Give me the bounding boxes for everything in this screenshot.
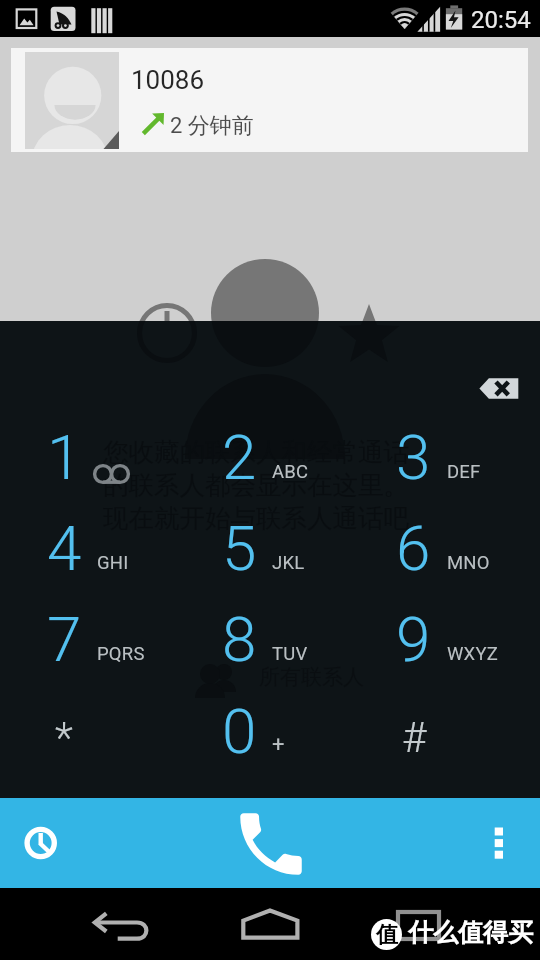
staticText: 8: [222, 603, 257, 676]
button[interactable]: 7: [0, 593, 180, 684]
staticText: 6: [396, 512, 431, 585]
staticText: +: [272, 732, 285, 758]
staticText: MNO: [447, 552, 490, 574]
staticText: 什么值得买: [408, 917, 533, 948]
button[interactable]: Call history: [8, 811, 74, 877]
staticText: JKL: [272, 552, 305, 574]
staticText: 1: [47, 421, 82, 494]
button[interactable]: Dial: [230, 803, 312, 885]
staticText: 10086: [131, 65, 205, 95]
staticText: 2: [222, 421, 257, 494]
staticText: WXYZ: [447, 643, 499, 665]
button[interactable]: Back: [86, 904, 154, 944]
button[interactable]: *: [0, 685, 180, 776]
staticText: 值: [376, 921, 398, 949]
button[interactable]: 9: [360, 593, 540, 684]
staticText: ABC: [272, 461, 309, 483]
staticText: *: [55, 713, 73, 762]
staticText: 5: [222, 512, 257, 585]
button[interactable]: 3: [360, 411, 540, 502]
button[interactable]: 1: [0, 411, 180, 502]
button[interactable]: More options: [472, 812, 524, 874]
button[interactable]: 5: [180, 502, 360, 593]
button[interactable]: Delete: [463, 351, 535, 407]
button[interactable]: Recent apps: [393, 906, 447, 944]
button[interactable]: 2: [180, 411, 360, 502]
button[interactable]: #: [360, 685, 540, 776]
staticText: 3: [396, 421, 431, 494]
staticText: TUV: [272, 643, 308, 665]
staticText: GHI: [97, 552, 129, 574]
button[interactable]: 0: [180, 685, 360, 776]
staticText: 2 分钟前: [170, 112, 254, 140]
button[interactable]: 10086: [11, 48, 528, 152]
button[interactable]: 4: [0, 502, 180, 593]
staticText: PQRS: [97, 643, 145, 665]
staticText: 您收藏的联系人和经常通话 的联系人都会显示在这里。 现在就开始与联系人通话吧: [103, 436, 409, 534]
staticText: 0: [222, 695, 257, 768]
staticText: 7: [47, 603, 82, 676]
button[interactable]: Home: [236, 904, 306, 944]
staticText: DEF: [447, 461, 481, 483]
staticText: 4: [47, 512, 82, 585]
staticText: 20:54: [471, 6, 531, 34]
button[interactable]: 8: [180, 593, 360, 684]
staticText: #: [402, 713, 427, 762]
staticText: 9: [396, 603, 431, 676]
button[interactable]: 6: [360, 502, 540, 593]
